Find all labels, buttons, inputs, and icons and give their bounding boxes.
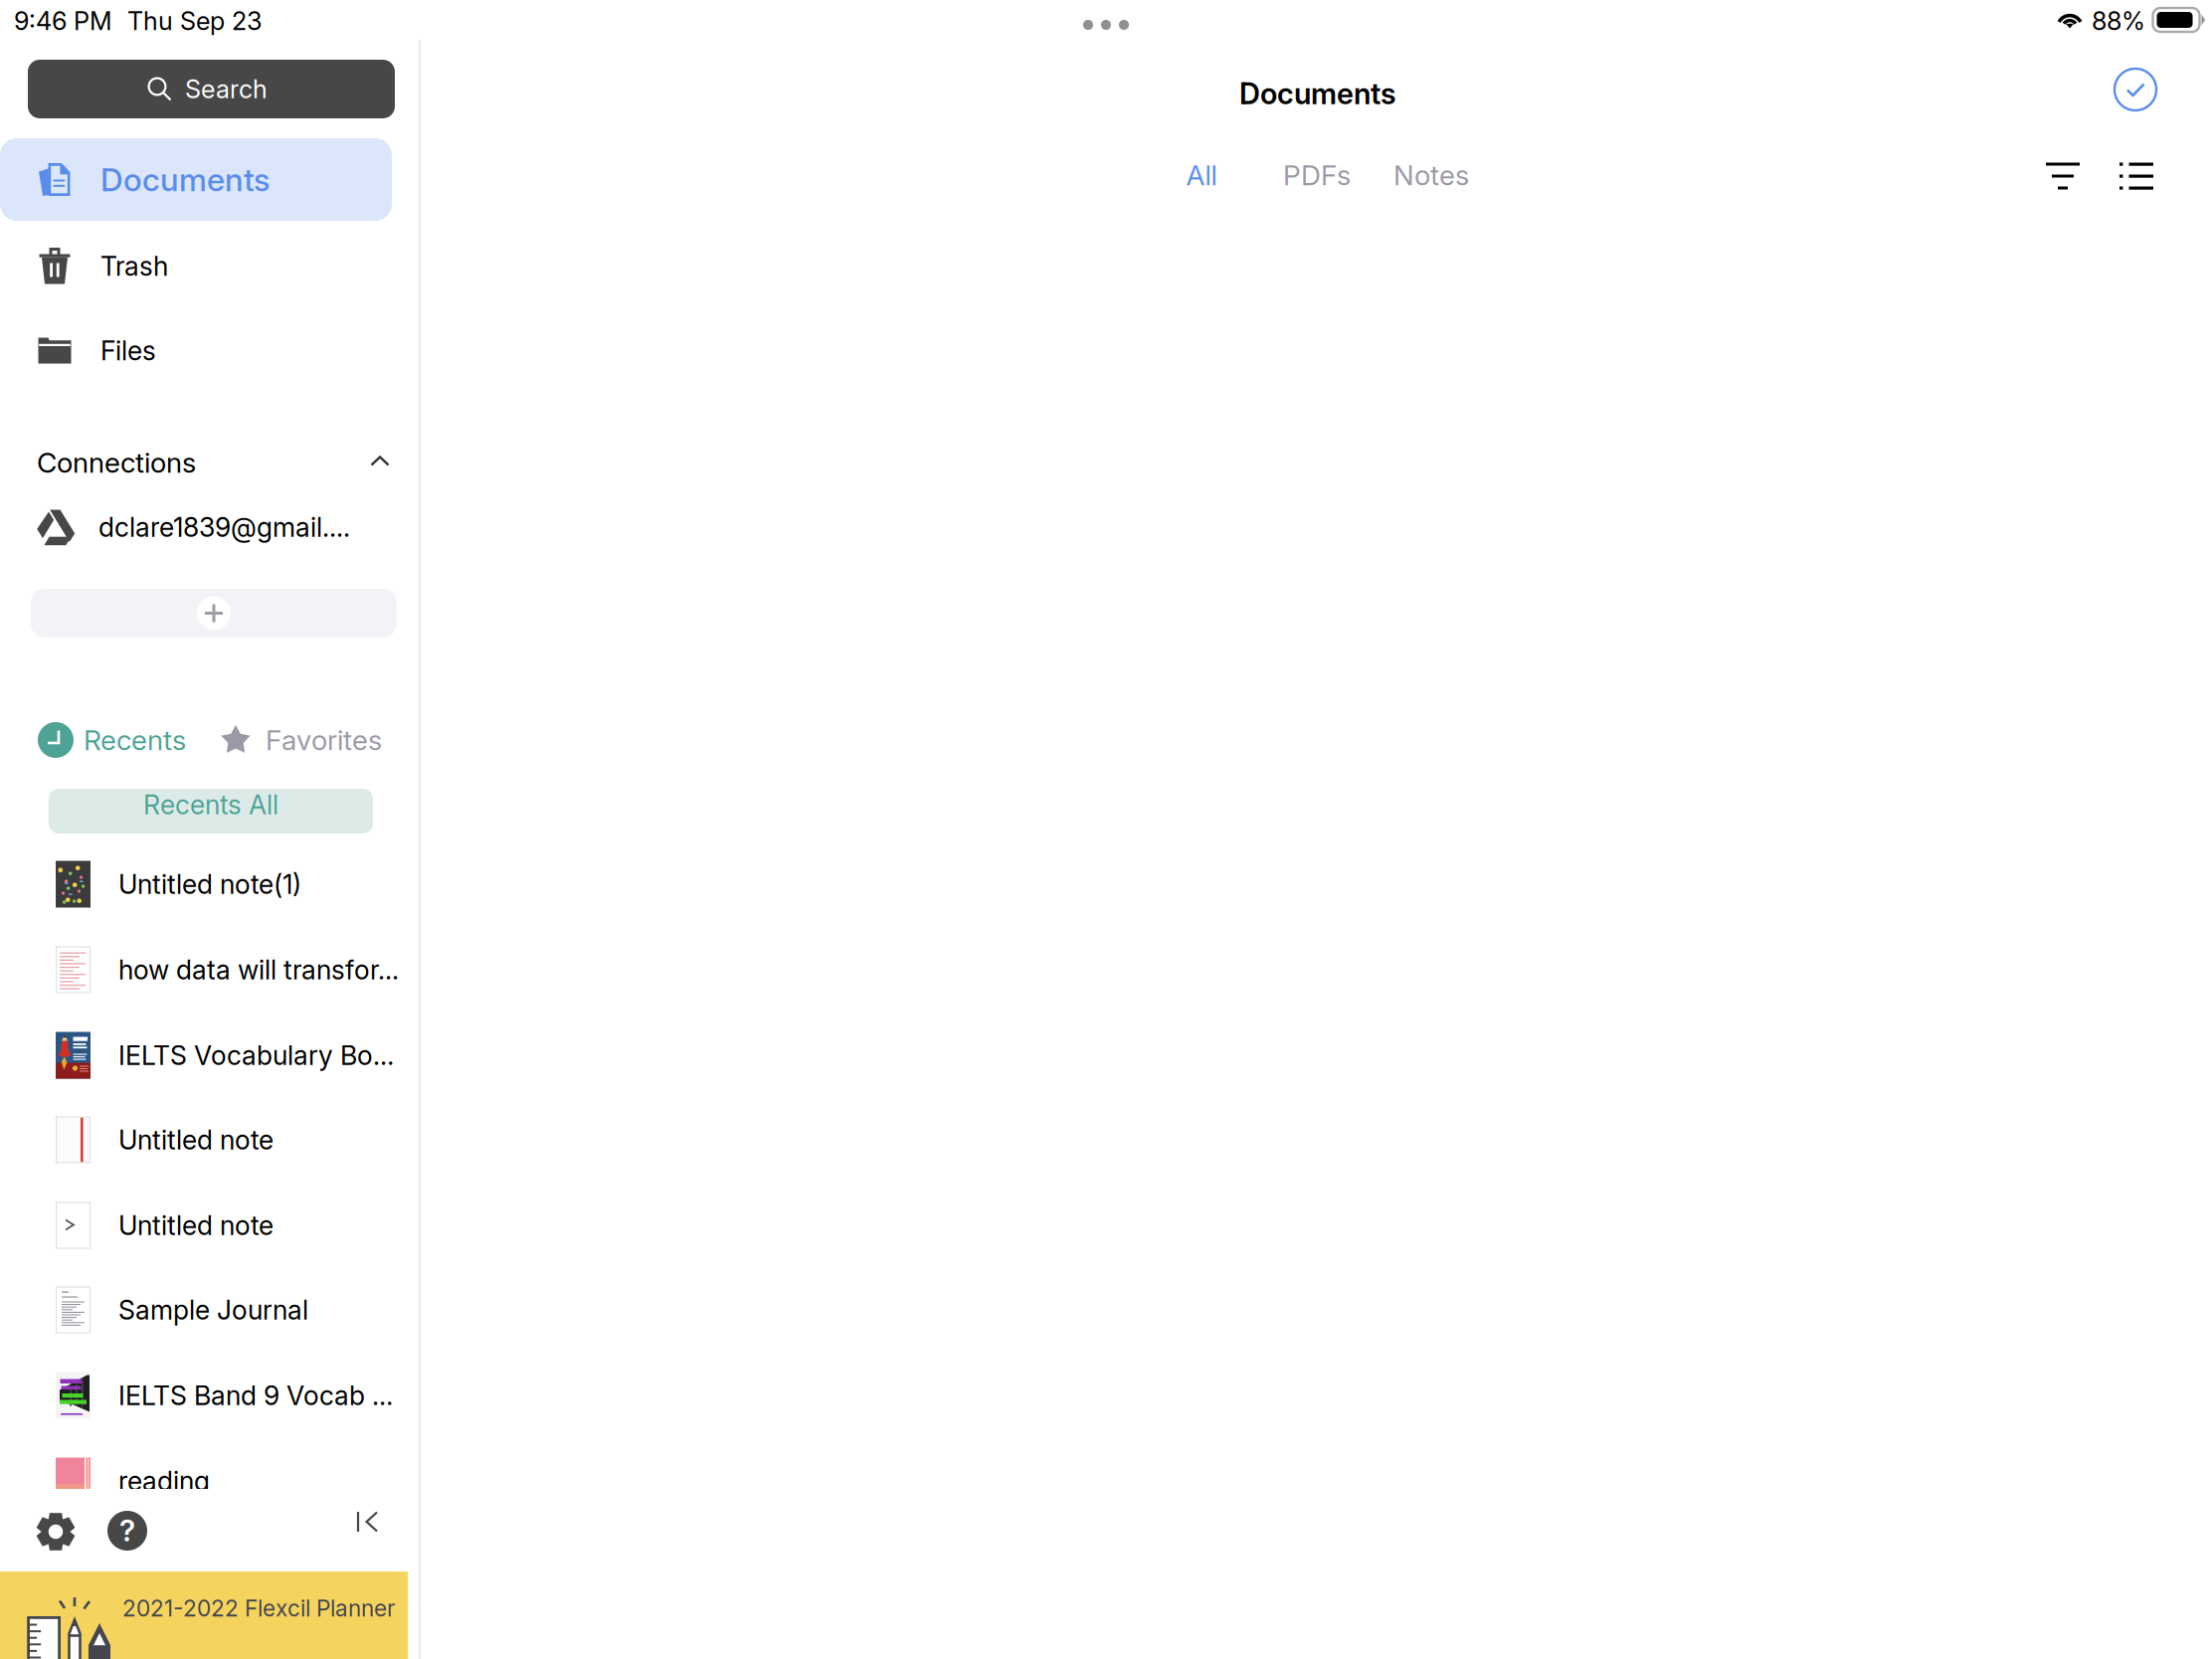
button[interactable]: 2021-2022 Flexcil Planner (0, 1571, 408, 1659)
button[interactable]: Add connection (31, 589, 397, 638)
button[interactable]: Files (0, 309, 392, 392)
staticText: 9:46 PM (14, 6, 112, 36)
button[interactable]: Documents (0, 138, 392, 221)
button[interactable]: Untitled note(1) (0, 841, 420, 927)
staticText: All (1186, 158, 1217, 192)
button[interactable]: PDFs (1272, 151, 1362, 199)
staticText: reading (118, 1465, 210, 1497)
button[interactable]: Settings (32, 1508, 80, 1556)
staticText: Thu Sep 23 (127, 6, 263, 36)
button[interactable]: Collapse sidebar (356, 1510, 380, 1534)
button[interactable]: Connections (0, 440, 390, 485)
button[interactable]: Sort (2036, 149, 2090, 203)
staticText: IELTS Band 9 Vocab S... (118, 1379, 402, 1412)
staticText: Untitled note (118, 1209, 274, 1241)
staticText: how data will transfor... (118, 954, 399, 986)
staticText: 2021-2022 Flexcil Planner (122, 1595, 395, 1622)
staticText: Sample Journal (118, 1294, 308, 1326)
staticText: dclare1839@gmail.... (98, 511, 350, 543)
button[interactable]: reading (0, 1438, 420, 1524)
button[interactable]: Recents All (49, 789, 373, 833)
button[interactable]: IELTS Vocabulary Boo... (0, 1013, 420, 1098)
button[interactable]: Untitled note (0, 1183, 420, 1268)
staticText: PDFs (1283, 158, 1351, 192)
staticText: Files (100, 335, 156, 367)
button[interactable]: Select (2108, 62, 2163, 117)
staticText: 88% (2092, 6, 2145, 36)
button[interactable]: Help (107, 1511, 147, 1551)
staticText: ? (119, 1513, 135, 1548)
button[interactable]: Recents (38, 720, 187, 760)
button[interactable]: Sample Journal (0, 1267, 420, 1353)
staticText: Favorites (266, 723, 382, 757)
staticText: Recents All (143, 789, 278, 821)
button[interactable]: Search (28, 60, 395, 118)
staticText: Search (185, 74, 268, 104)
staticText: Untitled note(1) (118, 868, 301, 900)
staticText: Untitled note (118, 1124, 274, 1156)
button[interactable]: View as list (2110, 149, 2163, 203)
button[interactable]: Trash (0, 225, 392, 307)
staticText: Connections (37, 446, 196, 479)
staticText: Documents (1239, 76, 1396, 111)
staticText: Notes (1393, 158, 1469, 192)
button[interactable]: dclare1839@gmail.... (0, 492, 420, 562)
button[interactable]: how data will transfor... (0, 927, 420, 1013)
button[interactable]: Untitled note (0, 1097, 420, 1183)
button[interactable]: Notes (1385, 151, 1477, 199)
staticText: Recents (84, 723, 186, 757)
staticText: Trash (100, 250, 168, 282)
button[interactable]: IELTS Band 9 Vocab S... (0, 1353, 420, 1438)
button[interactable]: Favorites (220, 720, 394, 760)
staticText: Documents (100, 160, 270, 199)
button[interactable]: All (1167, 151, 1236, 199)
staticText: IELTS Vocabulary Boo... (118, 1039, 402, 1071)
